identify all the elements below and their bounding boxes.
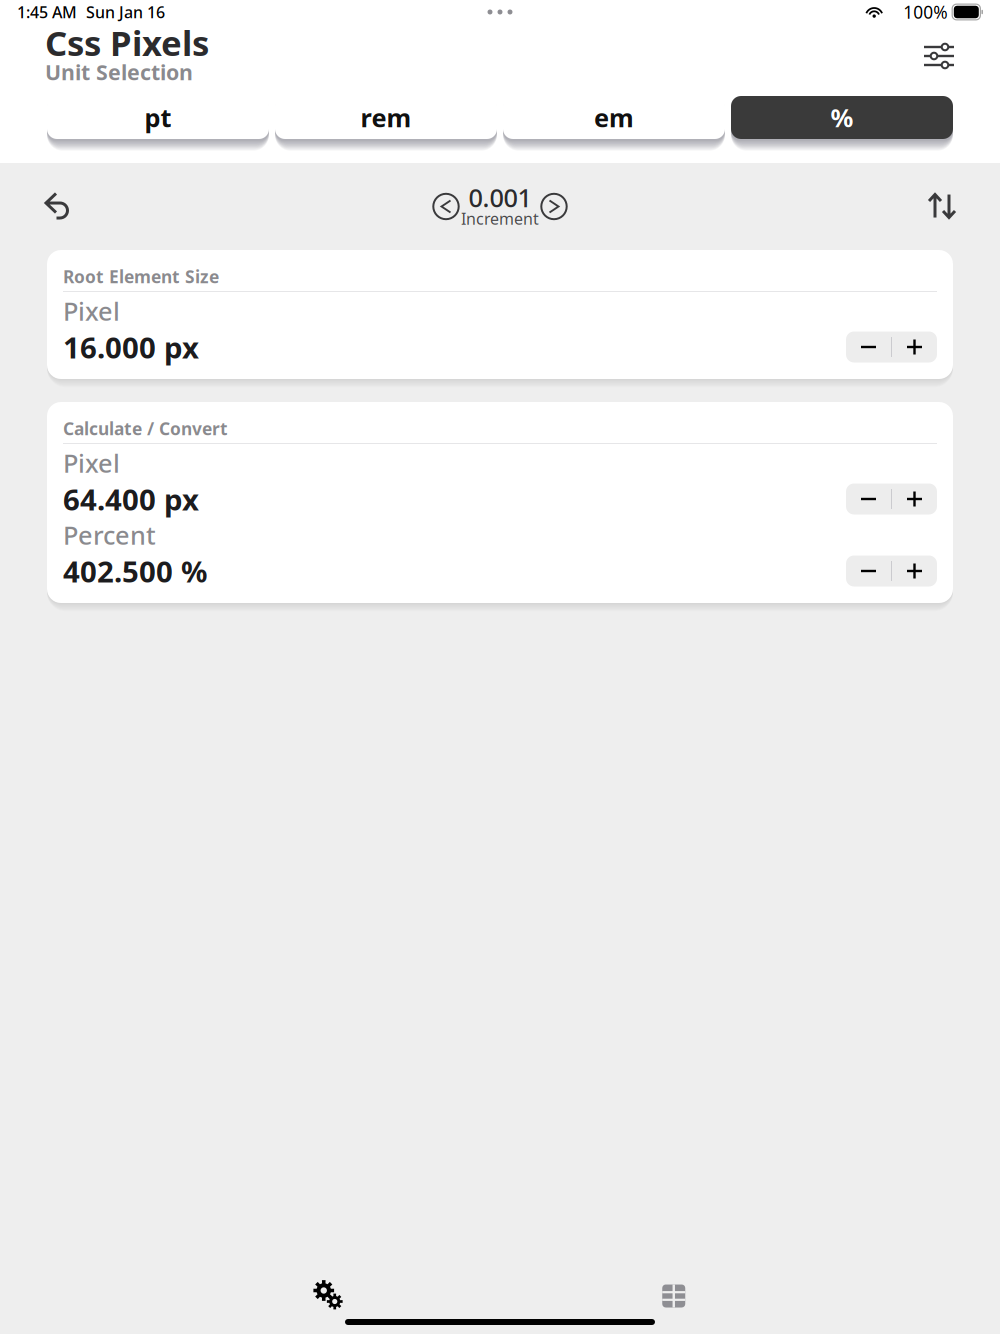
button[interactable]: % [731,96,953,152]
staticText: Pixel [63,446,120,480]
staticText: Sun Jan 16 [86,1,165,23]
staticText: Css Pixels [45,19,209,65]
staticText: pt [144,101,171,134]
staticText: em [594,101,634,134]
button[interactable]: pt [47,96,269,152]
button[interactable]: Larger increment [540,192,568,220]
button[interactable]: em [503,96,725,152]
button[interactable]: rem [275,96,497,152]
staticText: Pixel [63,294,120,328]
staticText: Calculate / Convert [63,417,228,440]
staticText: 16.000 px [63,327,199,366]
staticText: 0.001 [468,181,531,214]
button[interactable]: Adjust value [846,483,937,514]
staticText: Root Element Size [63,265,219,288]
button[interactable]: Undo [43,190,73,222]
button[interactable]: Settings [157,1273,501,1319]
staticText: rem [360,101,411,134]
staticText: 402.500 % [63,551,207,590]
button[interactable]: Adjust value [846,555,937,586]
staticText: 64.400 px [63,479,199,518]
button[interactable]: Smaller increment [432,192,460,220]
staticText: % [830,101,853,134]
button[interactable]: Swap units [927,190,957,222]
staticText: Unit Selection [45,58,193,86]
button[interactable]: Adjust value [846,331,937,362]
button[interactable]: Table [501,1273,846,1319]
staticText: Percent [63,518,156,552]
staticText: Increment [461,208,539,229]
staticText: 100% [903,0,947,23]
staticText: 1:45 AM [17,1,77,23]
button[interactable]: Settings [923,24,955,71]
